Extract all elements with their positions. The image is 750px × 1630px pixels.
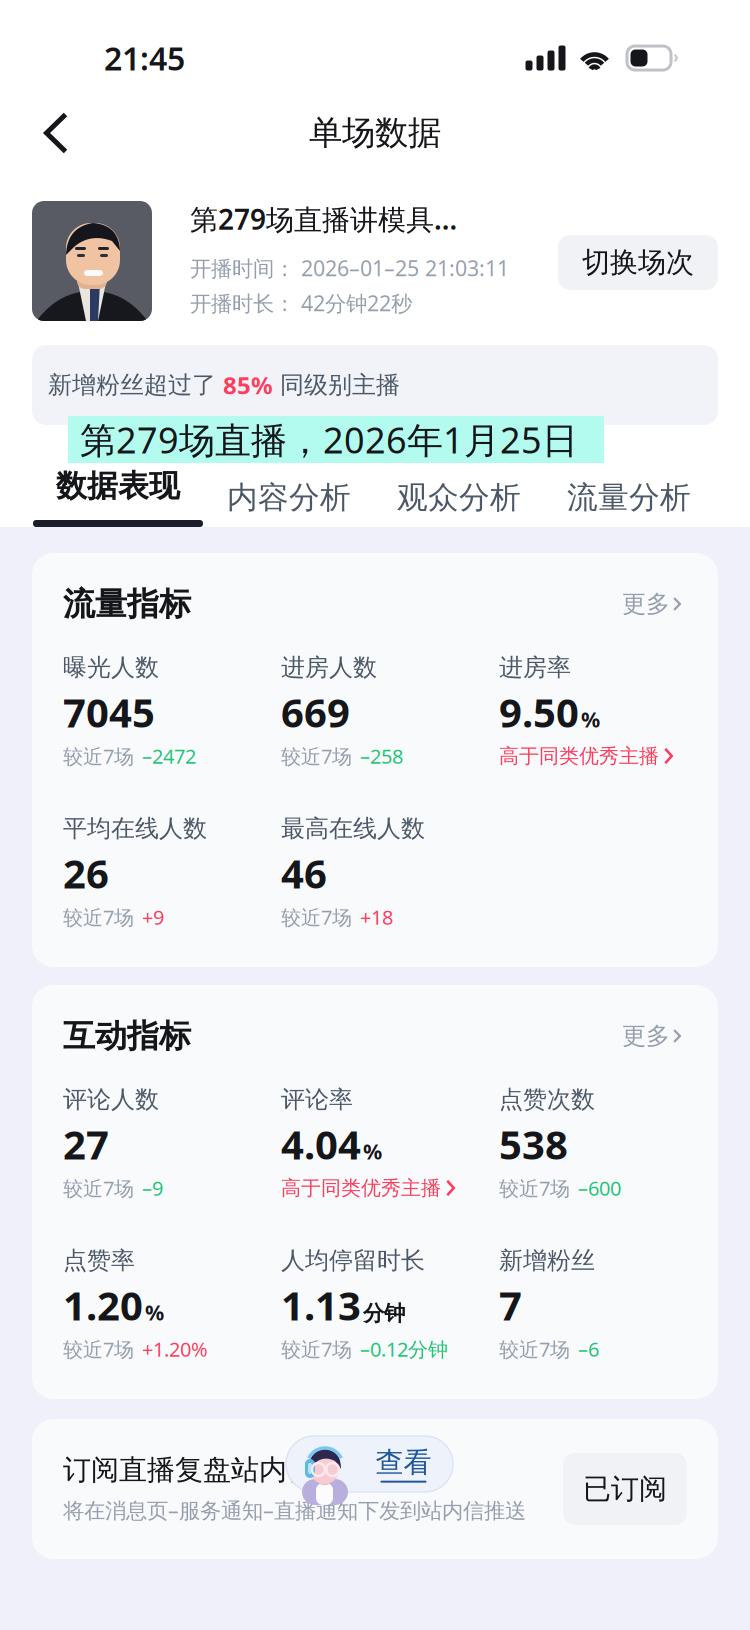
staticText: 已订阅 <box>583 1472 667 1506</box>
staticText: –2472 <box>142 743 196 769</box>
staticText: 新增粉丝超过了 <box>48 370 223 400</box>
staticText: 新增粉丝 <box>499 1246 595 1275</box>
staticText: 较近7场 <box>63 1336 134 1362</box>
staticText: 较近7场 <box>281 904 352 930</box>
button[interactable]: 更多 <box>612 1015 681 1057</box>
staticText: 单场数据 <box>309 112 441 153</box>
staticText: –0.12分钟 <box>360 1336 448 1362</box>
staticText: 538 <box>499 1117 568 1170</box>
staticText: +9 <box>142 904 164 930</box>
staticText: 更多 <box>622 589 670 619</box>
staticText: +1.20% <box>142 1336 208 1362</box>
staticText: 高于同类优秀主播 <box>499 744 659 768</box>
staticText: 进房人数 <box>281 653 377 682</box>
staticText: 1.13 <box>281 1278 361 1331</box>
staticText: % <box>581 705 600 733</box>
staticText: 高于同类优秀主播 <box>281 1176 441 1200</box>
staticText: 26 <box>63 846 109 899</box>
staticText: –6 <box>578 1336 599 1362</box>
staticText: 查看 <box>375 1445 431 1480</box>
button[interactable]: 数据表现 <box>32 468 204 527</box>
staticText: 第279场直播，2026年1月25日 <box>80 416 578 463</box>
staticText: 观众分析 <box>397 479 521 516</box>
staticText: 9.50 <box>499 685 579 738</box>
staticText: 进房率 <box>499 653 571 682</box>
staticText: 曝光人数 <box>63 653 159 682</box>
staticText: 21:45 <box>104 37 185 79</box>
staticText: 较近7场 <box>63 1175 134 1201</box>
staticText: 同级别主播 <box>273 370 400 400</box>
staticText: 将在消息页–服务通知–直播通知下发到站内信推送 <box>63 1496 526 1524</box>
staticText: 评论率 <box>281 1085 353 1114</box>
staticText: 点赞次数 <box>499 1085 595 1114</box>
staticText: 较近7场 <box>281 1336 352 1362</box>
staticText: 数据表现 <box>56 467 180 505</box>
staticText: 较近7场 <box>63 743 134 769</box>
staticText: 较近7场 <box>499 1175 570 1201</box>
staticText: 第279场直播讲模具… <box>190 200 457 238</box>
staticText: 7045 <box>63 685 155 738</box>
staticText: 订阅直播复盘站内信 <box>63 1453 315 1487</box>
staticText: 4.04 <box>281 1117 361 1170</box>
staticText: 互动指标 <box>63 1016 191 1056</box>
button[interactable]: 更多 <box>612 583 681 625</box>
button[interactable]: 流量分析 <box>544 479 714 515</box>
staticText: 人均停留时长 <box>281 1246 425 1275</box>
staticText: +18 <box>360 904 393 930</box>
staticText: 流量分析 <box>567 479 691 516</box>
staticText: 46 <box>281 846 327 899</box>
staticText: 内容分析 <box>227 479 351 516</box>
staticText: 开播时间： 2026–01–25 21:03:11 <box>190 254 509 282</box>
button[interactable]: 已订阅 <box>563 1453 687 1525</box>
staticText: 669 <box>281 685 350 738</box>
staticText: 较近7场 <box>499 1336 570 1362</box>
button[interactable]: 观众分析 <box>374 479 544 515</box>
staticText: 更多 <box>622 1021 670 1051</box>
staticText: –258 <box>360 743 403 769</box>
staticText: 27 <box>63 1117 109 1170</box>
staticText: 较近7场 <box>63 904 134 930</box>
staticText: 点赞率 <box>63 1246 135 1275</box>
staticText: –600 <box>578 1175 621 1201</box>
staticText: 流量指标 <box>63 584 191 624</box>
staticText: % <box>145 1298 164 1326</box>
staticText: 最高在线人数 <box>281 814 425 843</box>
staticText: 分钟 <box>363 1300 405 1326</box>
staticText: 开播时长： 42分钟22秒 <box>190 289 412 317</box>
button[interactable]: View livestream recap <box>286 1436 453 1492</box>
staticText: 85% <box>223 369 273 401</box>
staticText: 较近7场 <box>281 743 352 769</box>
staticText: –9 <box>142 1175 163 1201</box>
staticText: 平均在线人数 <box>63 814 207 843</box>
staticText: 7 <box>499 1278 522 1331</box>
button[interactable]: 切换场次 <box>558 235 718 290</box>
button[interactable]: 内容分析 <box>204 479 374 515</box>
staticText: 切换场次 <box>582 245 694 280</box>
button[interactable]: Back <box>12 95 100 171</box>
staticText: 评论人数 <box>63 1085 159 1114</box>
staticText: 1.20 <box>63 1278 143 1331</box>
staticText: % <box>363 1137 382 1165</box>
